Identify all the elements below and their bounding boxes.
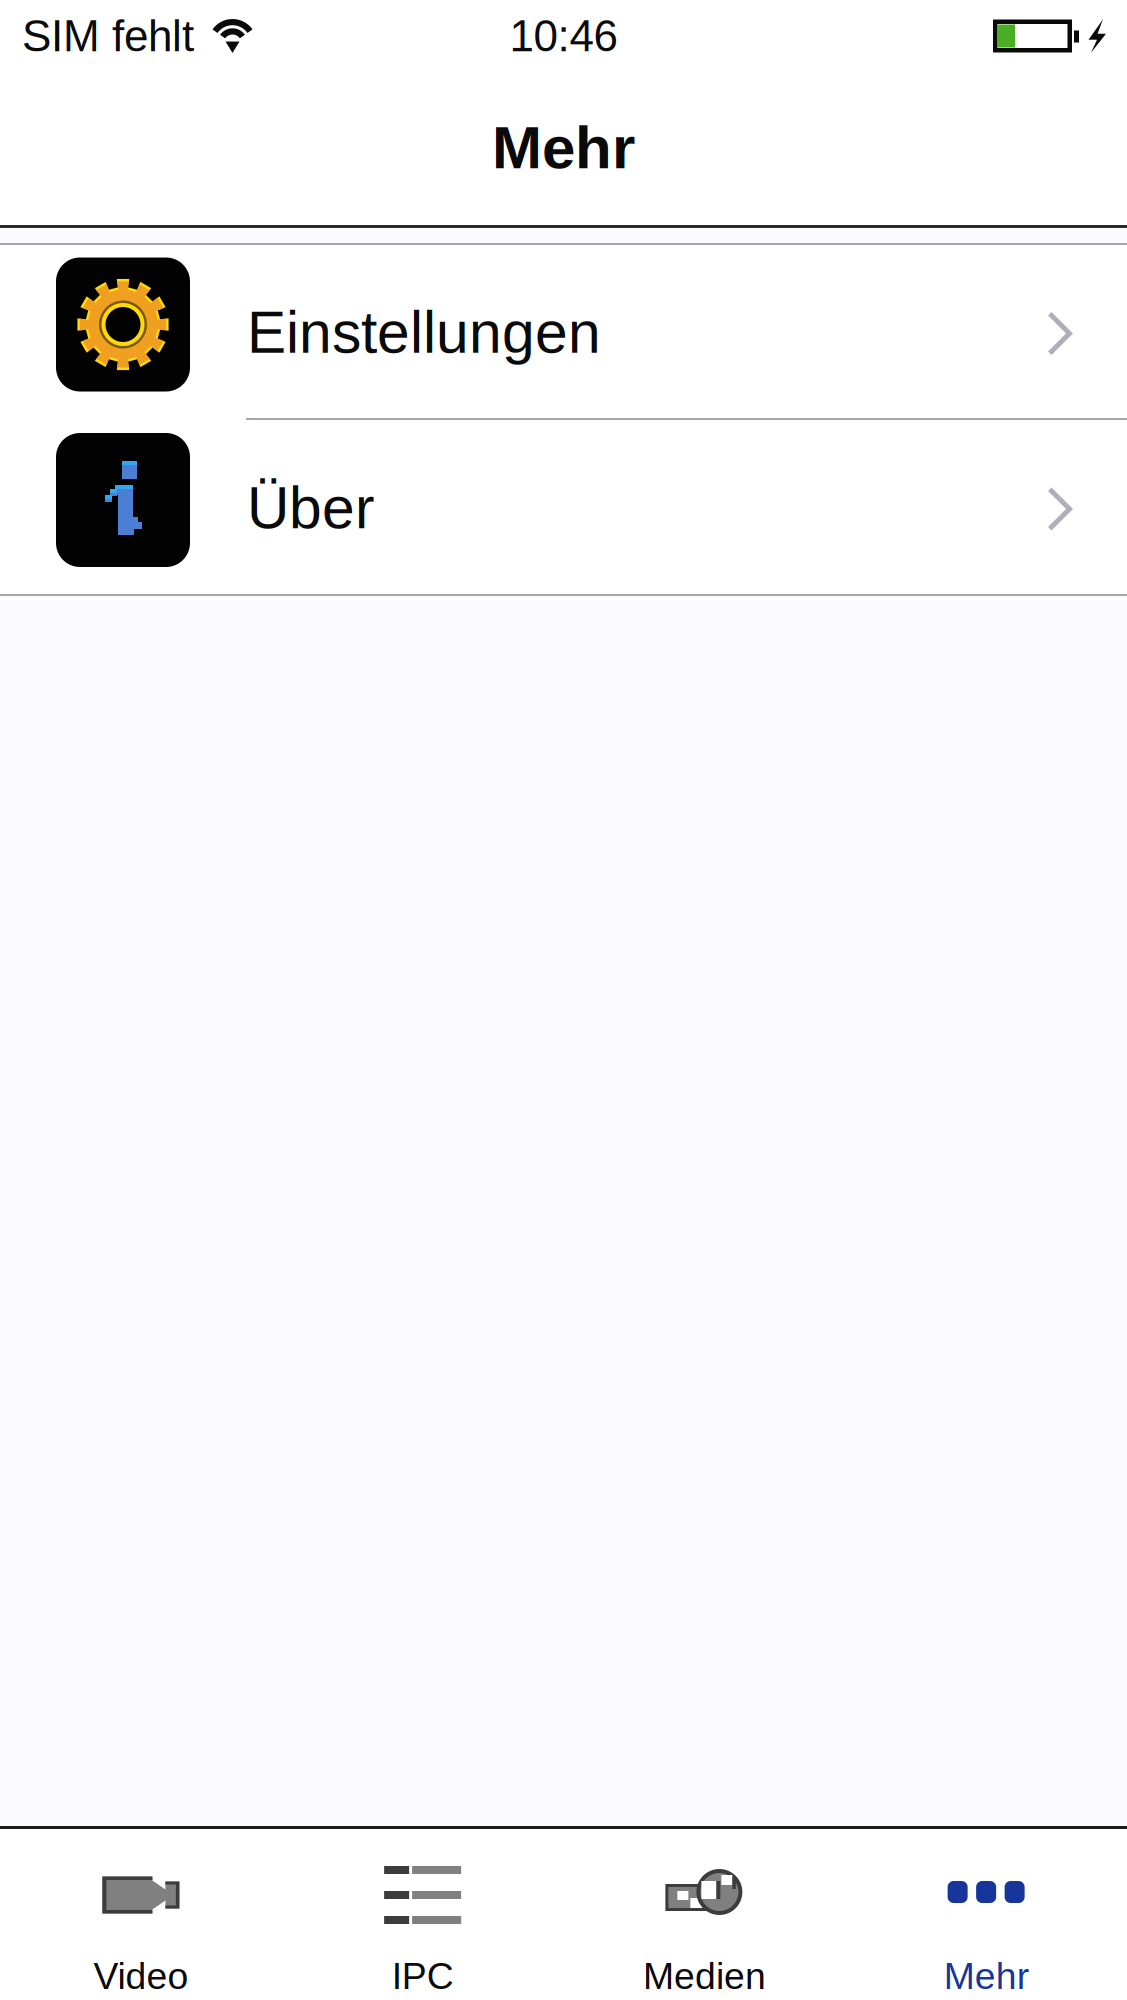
staticText: Über (247, 475, 375, 541)
button[interactable]: Medien (563, 1829, 845, 2000)
staticText: Video (93, 1955, 188, 1997)
staticText: Medien (643, 1955, 766, 1997)
button[interactable]: Mehr (845, 1829, 1127, 2000)
staticText: Einstellungen (247, 300, 601, 365)
button[interactable]: Über (0, 420, 1127, 594)
staticText: 10:46 (509, 11, 617, 61)
staticText: SIM fehlt (22, 11, 194, 61)
staticText: IPC (392, 1955, 454, 1997)
staticText: Mehr (492, 114, 635, 181)
button[interactable]: Einstellungen (0, 245, 1127, 418)
button[interactable]: IPC (282, 1829, 564, 2000)
staticText: Mehr (944, 1955, 1029, 1997)
button[interactable]: Video (0, 1829, 282, 2000)
